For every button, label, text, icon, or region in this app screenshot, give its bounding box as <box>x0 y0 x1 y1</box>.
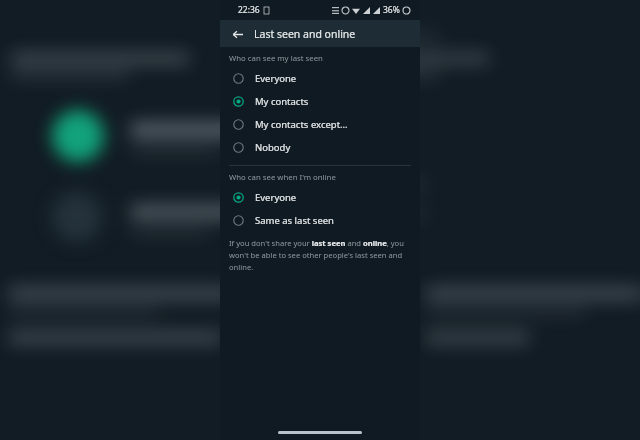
button[interactable]: Same as last seen <box>220 209 420 232</box>
staticText: Who can see when I'm online <box>229 172 336 183</box>
staticText: Last seen and online <box>254 27 356 41</box>
staticText: Nobody <box>255 141 291 154</box>
button[interactable]: Everyone <box>220 186 420 209</box>
button[interactable]: My contacts except… <box>220 113 420 136</box>
staticText: Same as last seen <box>255 214 334 227</box>
staticText: Everyone <box>255 72 297 85</box>
staticText: 22:36 <box>238 4 260 16</box>
button[interactable]: Nobody <box>220 136 420 159</box>
staticText: My contacts <box>255 95 309 108</box>
staticText: Everyone <box>255 191 297 204</box>
staticText: If you don't share your last seen and on… <box>229 238 411 273</box>
staticText: My contacts except… <box>255 118 348 131</box>
staticText: 36% <box>383 4 400 16</box>
staticText: Who can see my last seen <box>229 53 323 64</box>
button[interactable]: Everyone <box>220 67 420 90</box>
button[interactable]: My contacts <box>220 90 420 113</box>
button[interactable]: Back <box>226 23 248 45</box>
